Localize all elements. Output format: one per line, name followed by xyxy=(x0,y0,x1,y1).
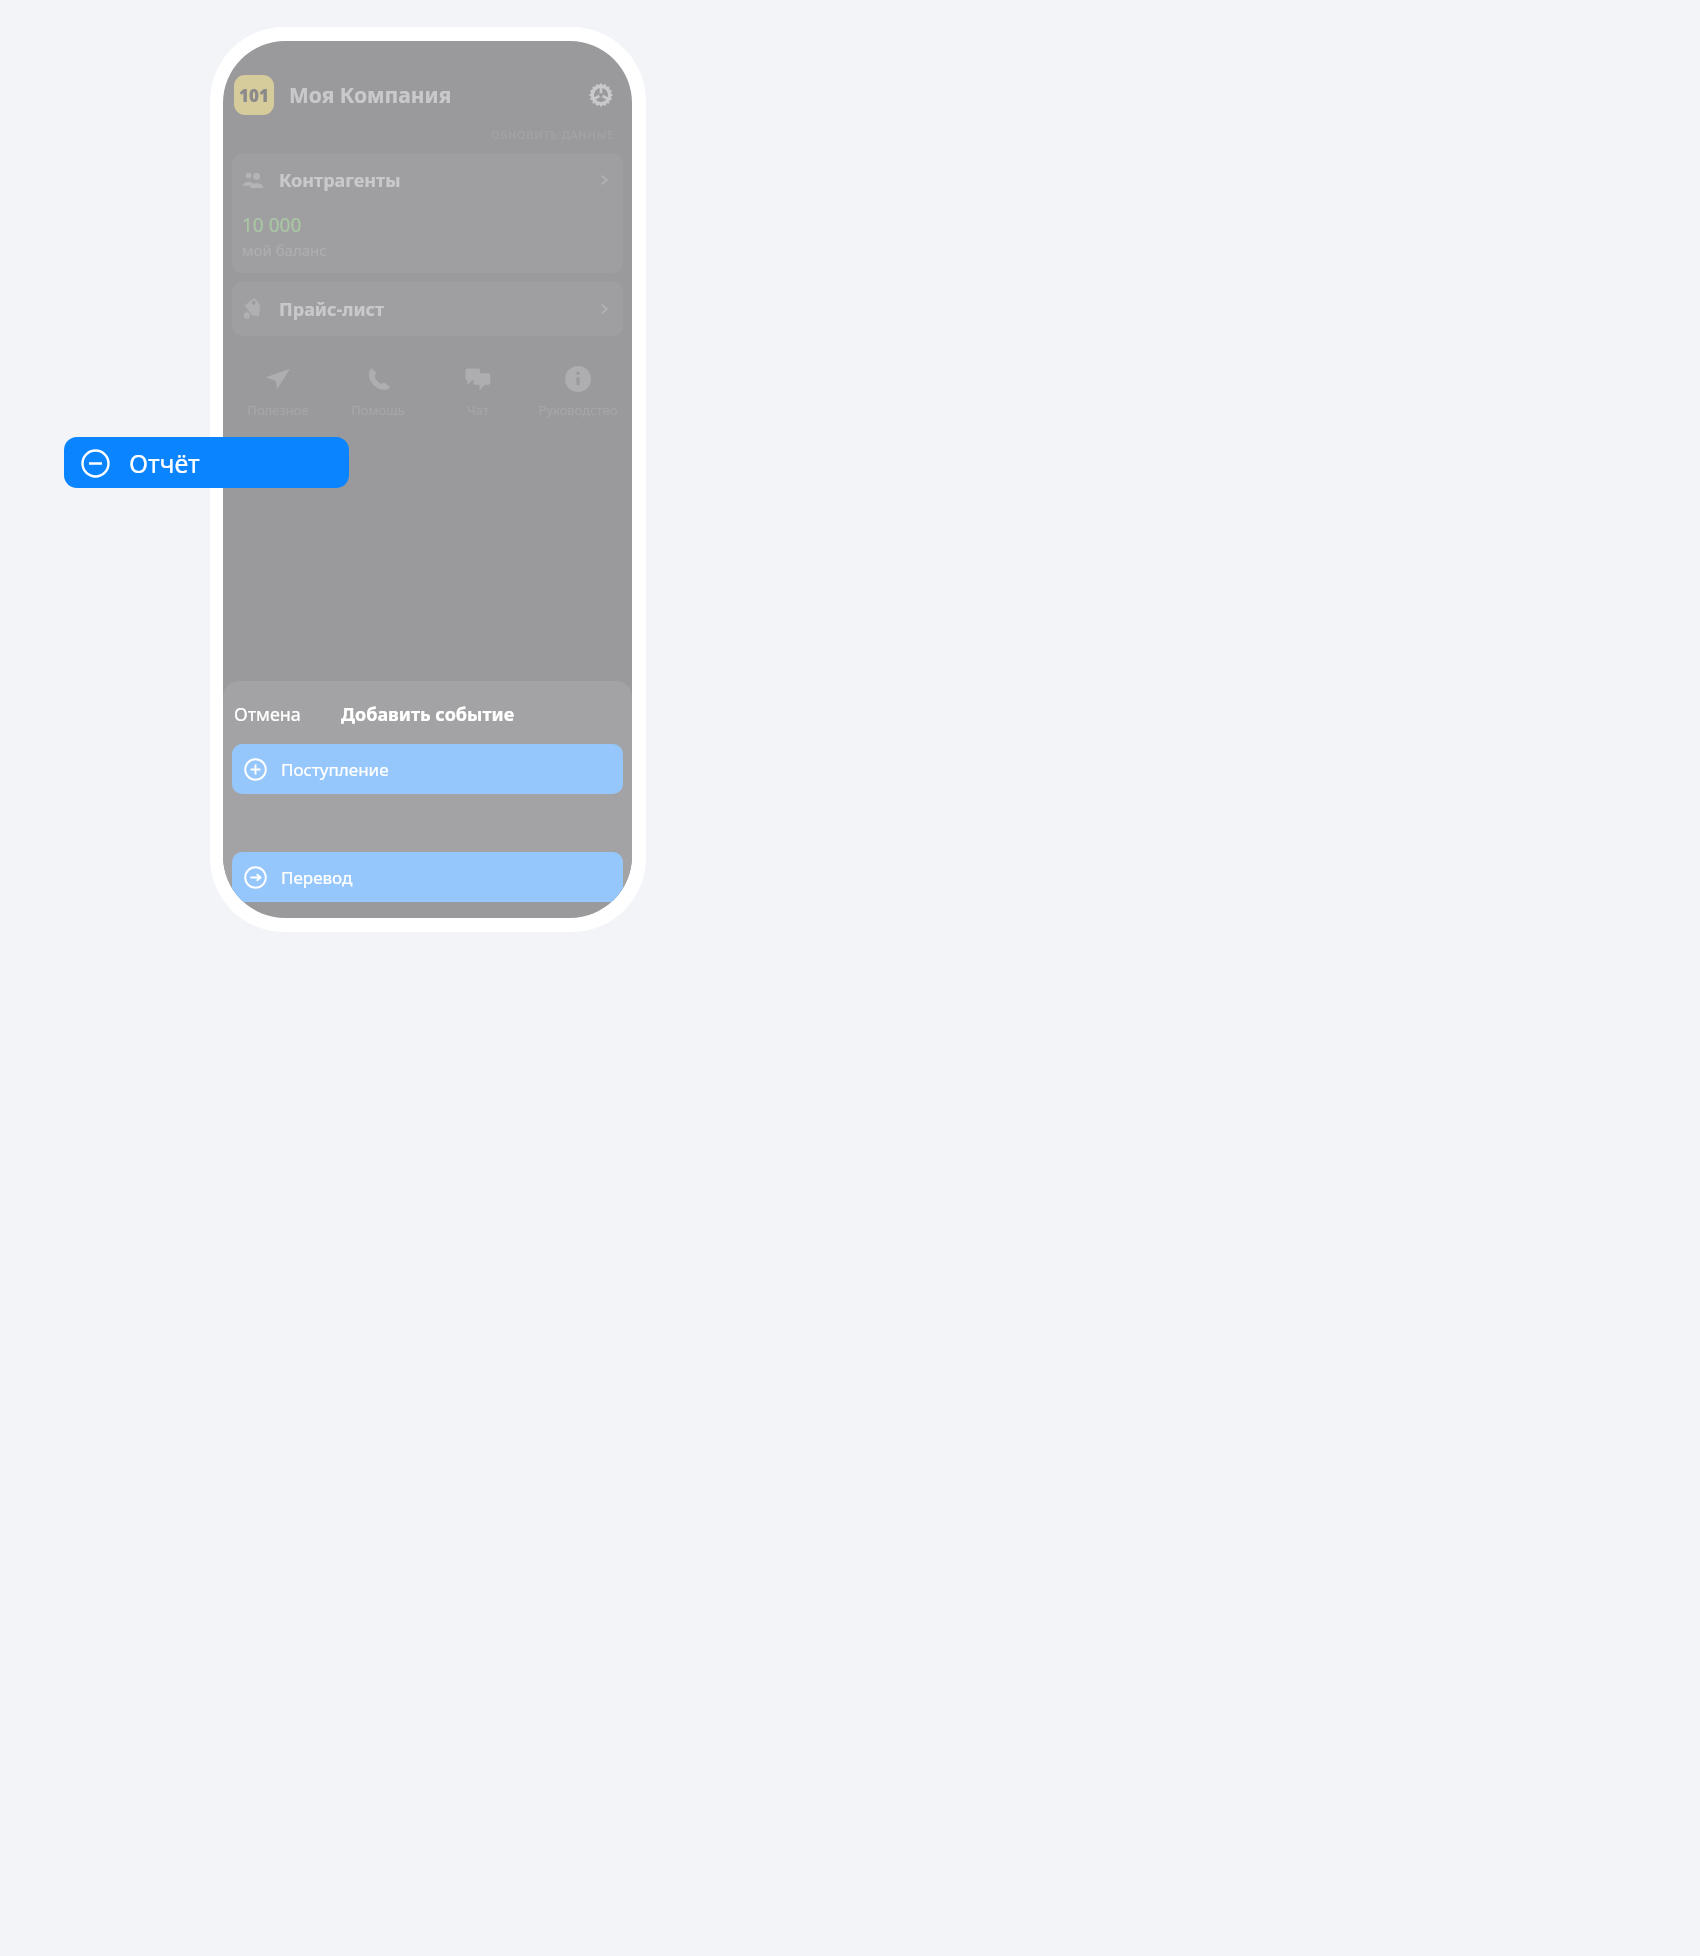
staticText: Отмена xyxy=(234,702,301,727)
button[interactable]: Поступление xyxy=(232,744,623,794)
staticText: Отчёт xyxy=(129,446,200,480)
staticText: Моя Компания xyxy=(289,81,452,110)
button[interactable]: Прайс-лист xyxy=(232,282,623,336)
staticText: Полезное xyxy=(247,401,309,419)
staticText: Помощь xyxy=(351,401,405,419)
button[interactable]: Чат xyxy=(428,360,528,423)
button[interactable]: Контрагенты xyxy=(232,154,623,273)
staticText: Контрагенты xyxy=(279,168,401,193)
staticText: Перевод xyxy=(281,866,353,889)
staticText: 101 xyxy=(239,84,269,107)
staticText: Руководство xyxy=(538,401,618,419)
button[interactable]: Полезное xyxy=(227,360,328,423)
staticText: Прайс-лист xyxy=(279,297,385,322)
button[interactable]: Руководство xyxy=(528,360,628,423)
button[interactable]: Отчёт xyxy=(64,437,349,488)
staticText: мой баланс xyxy=(242,240,327,260)
button[interactable]: 101 xyxy=(234,75,274,115)
button[interactable]: Помощь xyxy=(328,360,428,423)
staticText: ОБНОВИТЬ ДАННЫЕ xyxy=(491,127,615,142)
button[interactable]: Settings xyxy=(581,75,621,115)
staticText: Чат xyxy=(467,401,489,419)
button[interactable]: Перевод xyxy=(232,852,623,902)
button[interactable]: Отмена xyxy=(226,696,309,733)
staticText: Поступление xyxy=(281,758,389,781)
staticText: Добавить событие xyxy=(341,702,515,727)
staticText: 10 000 xyxy=(242,212,302,238)
